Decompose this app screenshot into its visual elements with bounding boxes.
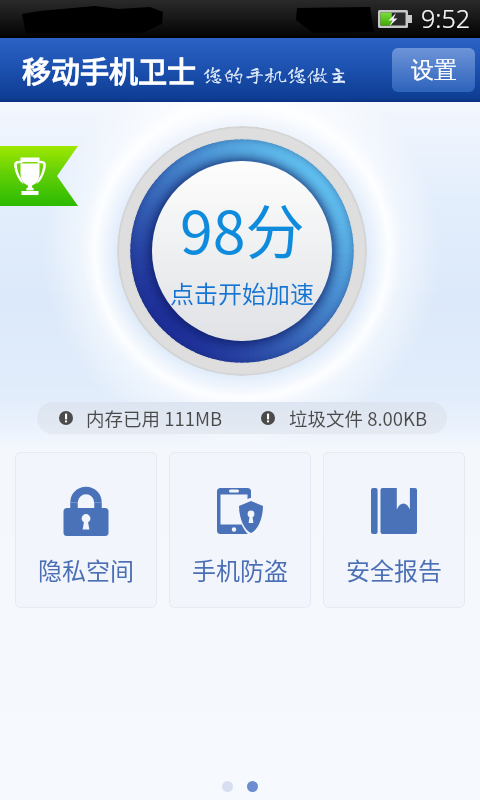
staticText: 您的手机您做主 [202, 64, 349, 85]
staticText: 隐私空间 [38, 552, 134, 587]
staticText: 移动手机卫士 [22, 49, 197, 91]
staticText: 98分 [180, 186, 305, 271]
staticText: 设置 [411, 56, 457, 85]
button[interactable]: 安全报告 [323, 452, 465, 608]
button[interactable]: 手机防盗 [169, 452, 311, 608]
button[interactable]: 内存已用 111MB [37, 402, 447, 434]
button[interactable]: Achievements [0, 146, 78, 206]
staticText: 垃圾文件 8.00KB [289, 405, 428, 432]
staticText: 手机防盗 [192, 552, 288, 587]
staticText: 点击开始加速 [170, 275, 314, 310]
button[interactable]: 设置 [392, 48, 475, 92]
staticText: 9:52 [421, 1, 470, 35]
button[interactable]: 98分 [117, 126, 367, 376]
staticText: 内存已用 111MB [86, 405, 223, 432]
button[interactable]: 隐私空间 [15, 452, 157, 608]
staticText: 安全报告 [346, 552, 442, 587]
